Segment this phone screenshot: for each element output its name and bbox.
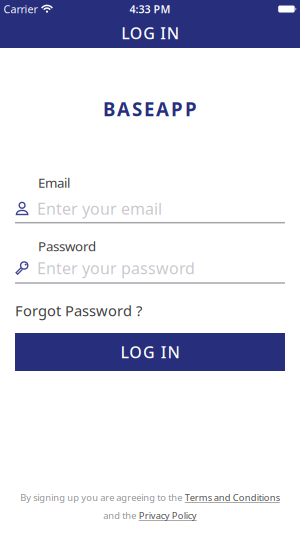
staticText: B A S E A P P	[103, 97, 197, 121]
button[interactable]: Enter your email	[15, 198, 285, 219]
staticText: By signing up you are agreeing to the	[20, 491, 182, 504]
staticText: LOG IN	[121, 22, 179, 44]
staticText: Enter your email	[37, 198, 162, 219]
staticText: Carrier	[3, 2, 37, 16]
button[interactable]: Privacy Policy	[139, 509, 197, 522]
staticText: and the	[103, 509, 136, 522]
button[interactable]: Terms and Conditions	[185, 491, 280, 504]
staticText: 4:33 PM	[129, 2, 170, 16]
staticText: Forgot Password ?	[15, 301, 142, 320]
staticText: Terms and Conditions	[185, 491, 280, 504]
button[interactable]: LOG IN	[15, 333, 285, 371]
button[interactable]: Enter your password	[15, 257, 285, 279]
staticText: Password	[38, 237, 96, 255]
staticText: Enter your password	[37, 257, 195, 279]
staticText: Email	[38, 174, 70, 191]
staticText: Privacy Policy	[139, 509, 197, 522]
button[interactable]: Forgot Password ?	[15, 301, 142, 320]
staticText: LOG IN	[120, 341, 179, 363]
